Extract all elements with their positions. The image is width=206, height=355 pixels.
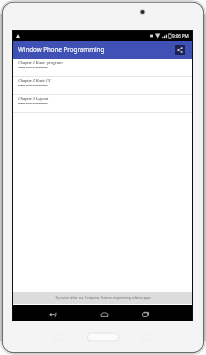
- staticText: Widow Phone Programming: [18, 66, 48, 69]
- staticText: Try some other our Computer Science engi…: [55, 296, 151, 300]
- button[interactable]: Recents: [139, 308, 151, 320]
- staticText: Chapter 3 Layout: [18, 96, 49, 102]
- staticText: Widow Phone Programming: [18, 84, 48, 87]
- button[interactable]: Chapter 1 Basic program: [13, 59, 192, 76]
- staticText: Chapter 1 Basic program: [18, 60, 63, 66]
- button[interactable]: Chapter 3 Layout: [13, 95, 192, 112]
- button[interactable]: Chapter 2 Basic UI: [13, 77, 192, 94]
- staticText: Widow Phone Programming: [18, 102, 48, 105]
- button[interactable]: Home: [98, 308, 110, 320]
- button[interactable]: Share: [175, 45, 185, 55]
- staticText: Window Phone Programming: [18, 45, 105, 54]
- staticText: Chapter 2 Basic UI: [18, 78, 51, 84]
- button[interactable]: Back: [46, 308, 58, 320]
- staticText: 9:06 PM: [172, 33, 189, 39]
